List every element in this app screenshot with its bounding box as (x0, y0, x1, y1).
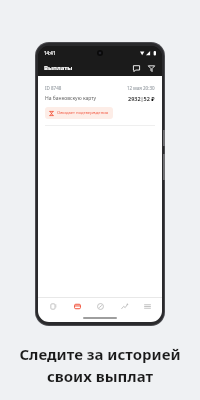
staticText: своих выплат (47, 366, 153, 386)
staticText: 12 мая 20:30 (127, 85, 155, 91)
button[interactable]: Support (92, 298, 108, 314)
staticText: 2932|52 ₽ (128, 95, 155, 102)
button[interactable]: ID 8748 (38, 76, 162, 132)
button[interactable]: Filter (145, 62, 157, 74)
button[interactable]: Stats (116, 298, 132, 314)
button[interactable]: Ожидает подтверждения (45, 107, 113, 119)
button[interactable]: Payouts (69, 298, 85, 314)
staticText: ID 8748 (45, 85, 62, 91)
staticText: Ожидает подтверждения (57, 110, 109, 116)
staticText: Следите за историей (19, 344, 181, 364)
button[interactable]: Chat (130, 62, 142, 74)
staticText: На банковскую карту (45, 95, 97, 102)
staticText: Выплаты (44, 64, 73, 72)
button[interactable]: Orders (45, 298, 61, 314)
staticText: 14:41 (44, 50, 56, 56)
button[interactable]: Menu (139, 298, 155, 314)
